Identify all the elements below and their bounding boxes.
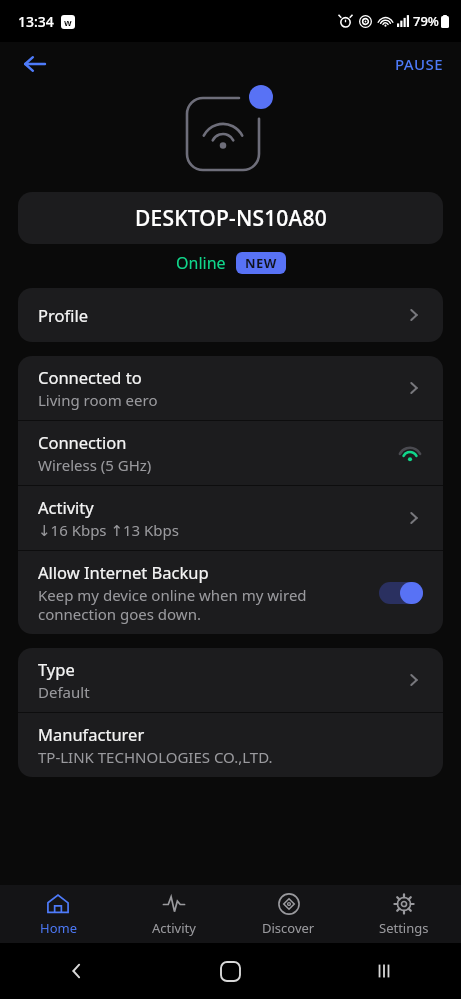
staticText: Manufacturer	[38, 723, 145, 745]
staticText: Activity	[152, 919, 196, 937]
button[interactable]: Discover	[231, 885, 346, 943]
button[interactable]: Recents	[307, 943, 461, 999]
staticText: PAUSE	[395, 54, 443, 74]
button[interactable]: Allow Internet Backup	[18, 551, 443, 634]
staticText: Connected to	[38, 366, 142, 388]
button[interactable]: Activity	[18, 486, 443, 550]
staticText: NEW	[245, 254, 277, 272]
button[interactable]: Settings	[346, 885, 461, 943]
button[interactable]: Home	[0, 885, 116, 943]
staticText: Profile	[38, 304, 88, 326]
staticText: ↓16 Kbps ↑13 Kbps	[38, 520, 179, 540]
button[interactable]: Back	[0, 943, 153, 999]
staticText: Wireless (5 GHz)	[38, 455, 152, 475]
button[interactable]: Manufacturer	[18, 713, 443, 777]
staticText: Activity	[38, 496, 94, 518]
button[interactable]: Back	[10, 42, 58, 86]
staticText: Type	[38, 658, 75, 680]
button[interactable]: Connection	[18, 421, 443, 485]
staticText: Keep my device online when my wired conn…	[38, 585, 307, 624]
button[interactable]: Activity	[116, 885, 231, 943]
button[interactable]: Type	[18, 648, 443, 712]
staticText: Default	[38, 682, 90, 702]
staticText: Settings	[379, 919, 429, 937]
staticText: Discover	[262, 919, 315, 937]
staticText: TP-LINK TECHNOLOGIES CO.,LTD.	[38, 747, 273, 767]
staticText: Living room eero	[38, 390, 158, 410]
staticText: w	[64, 16, 72, 28]
staticText: Allow Internet Backup	[38, 561, 209, 583]
staticText: Home	[40, 919, 77, 937]
button[interactable]: Home	[153, 943, 307, 999]
button[interactable]: PAUSE	[385, 46, 453, 82]
button[interactable]: Connected to	[18, 356, 443, 420]
staticText: Connection	[38, 431, 127, 453]
staticText: 79%	[413, 12, 439, 30]
button[interactable]: Allow Internet Backup toggle	[379, 582, 423, 604]
button[interactable]: DESKTOP-NS10A80	[18, 192, 443, 244]
button[interactable]: Profile	[18, 288, 443, 342]
staticText: 13:34	[18, 12, 54, 31]
staticText: Online	[176, 252, 226, 274]
staticText: DESKTOP-NS10A80	[135, 204, 327, 233]
